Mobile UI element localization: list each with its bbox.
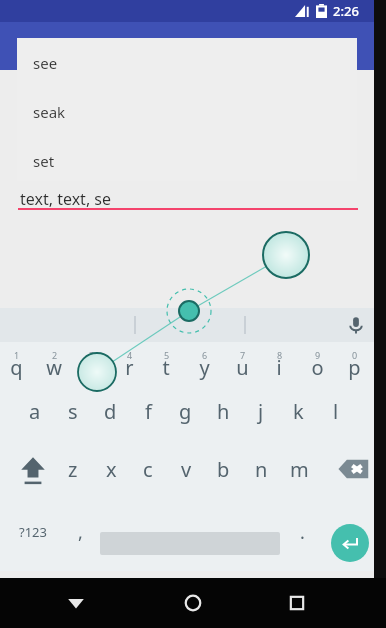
button[interactable]: f	[130, 390, 166, 432]
staticText: 0	[352, 349, 358, 361]
button[interactable]: seak	[17, 87, 357, 136]
button[interactable]: e	[73, 346, 109, 388]
staticText: f	[145, 398, 152, 425]
button[interactable]: Recent apps	[283, 589, 311, 617]
staticText: r	[125, 354, 134, 381]
button[interactable]: k	[280, 390, 316, 432]
button[interactable]: l	[318, 390, 354, 432]
button[interactable]: y	[186, 346, 222, 388]
button[interactable]: u	[224, 346, 260, 388]
button[interactable]: Voice input	[344, 313, 368, 337]
staticText: q	[10, 354, 23, 381]
button[interactable]: i	[261, 346, 297, 388]
staticText: h	[217, 398, 230, 425]
staticText: l	[333, 398, 339, 425]
staticText: t	[162, 354, 170, 381]
button[interactable]: .	[286, 510, 318, 554]
button[interactable]: c	[130, 448, 166, 490]
button[interactable]: b	[205, 448, 241, 490]
staticText: k	[293, 398, 304, 425]
staticText: .	[300, 520, 305, 545]
button[interactable]: ?123	[8, 510, 58, 554]
staticText: p	[348, 354, 361, 381]
button[interactable]: n	[243, 448, 279, 490]
button[interactable]: g	[167, 390, 203, 432]
button[interactable]: v	[168, 448, 204, 490]
staticText: y	[199, 354, 210, 381]
staticText: set	[33, 151, 55, 171]
staticText: 1	[14, 349, 20, 361]
staticText: ,	[78, 520, 83, 545]
staticText: j	[258, 398, 264, 425]
staticText: 6	[202, 349, 208, 361]
staticText: 2	[52, 349, 58, 361]
button[interactable]: w	[36, 346, 72, 388]
button[interactable]: h	[205, 390, 241, 432]
button[interactable]: set	[17, 136, 357, 185]
staticText: 4	[127, 349, 133, 361]
staticText: z	[68, 456, 78, 483]
staticText: 3	[89, 349, 95, 361]
staticText: e	[85, 354, 97, 381]
staticText: n	[255, 456, 268, 483]
button[interactable]: Enter	[331, 524, 369, 562]
staticText: b	[217, 456, 230, 483]
button[interactable]: t	[148, 346, 184, 388]
button[interactable]: j	[243, 390, 279, 432]
staticText: 9	[315, 349, 321, 361]
button[interactable]: Home	[179, 589, 207, 617]
staticText: ?123	[19, 523, 47, 541]
staticText: m	[290, 456, 309, 483]
staticText: text, text, se	[20, 188, 112, 210]
button[interactable]: r	[111, 346, 147, 388]
button[interactable]: d	[92, 390, 128, 432]
staticText: i	[276, 354, 282, 381]
staticText: x	[106, 456, 117, 483]
button[interactable]: q	[0, 346, 34, 388]
staticText: 5	[164, 349, 170, 361]
button[interactable]: ,	[62, 510, 98, 554]
button[interactable]: a	[17, 390, 53, 432]
staticText: g	[179, 398, 192, 425]
button[interactable]: Back	[62, 589, 90, 617]
staticText: d	[104, 398, 117, 425]
button[interactable]: s	[55, 390, 91, 432]
staticText: c	[143, 456, 153, 483]
staticText: s	[68, 398, 78, 425]
button[interactable]: see	[17, 38, 357, 87]
button[interactable]: p	[336, 346, 372, 388]
button[interactable]: x	[93, 448, 129, 490]
staticText: u	[236, 354, 249, 381]
button[interactable]: m	[281, 448, 317, 490]
staticText: see	[33, 53, 58, 73]
staticText: w	[46, 354, 62, 381]
staticText: seak	[33, 102, 66, 122]
staticText: a	[29, 398, 41, 425]
button[interactable]: Shift	[12, 448, 54, 490]
button[interactable]: o	[299, 346, 335, 388]
button[interactable]: z	[55, 448, 91, 490]
staticText: 7	[240, 349, 246, 361]
button[interactable]: Backspace	[333, 448, 375, 490]
staticText: 8	[277, 349, 283, 361]
staticText: o	[311, 354, 324, 381]
staticText: v	[181, 456, 192, 483]
staticText: 2:26	[333, 2, 359, 20]
